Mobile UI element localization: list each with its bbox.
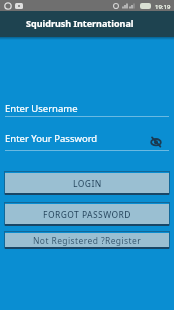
button[interactable]: Enter Username <box>0 100 174 118</box>
staticText: Squidrush International <box>26 17 134 29</box>
staticText: Enter Username <box>5 102 78 115</box>
staticText: 19:19 <box>155 3 171 11</box>
button[interactable]: FORGOT PASSWORD <box>4 202 170 227</box>
staticText: FORGOT PASSWORD <box>43 209 131 221</box>
staticText: Not Registered ?Register <box>33 235 142 247</box>
button[interactable]: LOGIN <box>4 171 170 196</box>
button[interactable]: Not Registered ?Register <box>4 231 170 250</box>
staticText: Enter Your Password <box>5 132 98 145</box>
staticText: LOGIN <box>73 178 102 190</box>
button[interactable]: Enter Your Password <box>0 130 174 151</box>
